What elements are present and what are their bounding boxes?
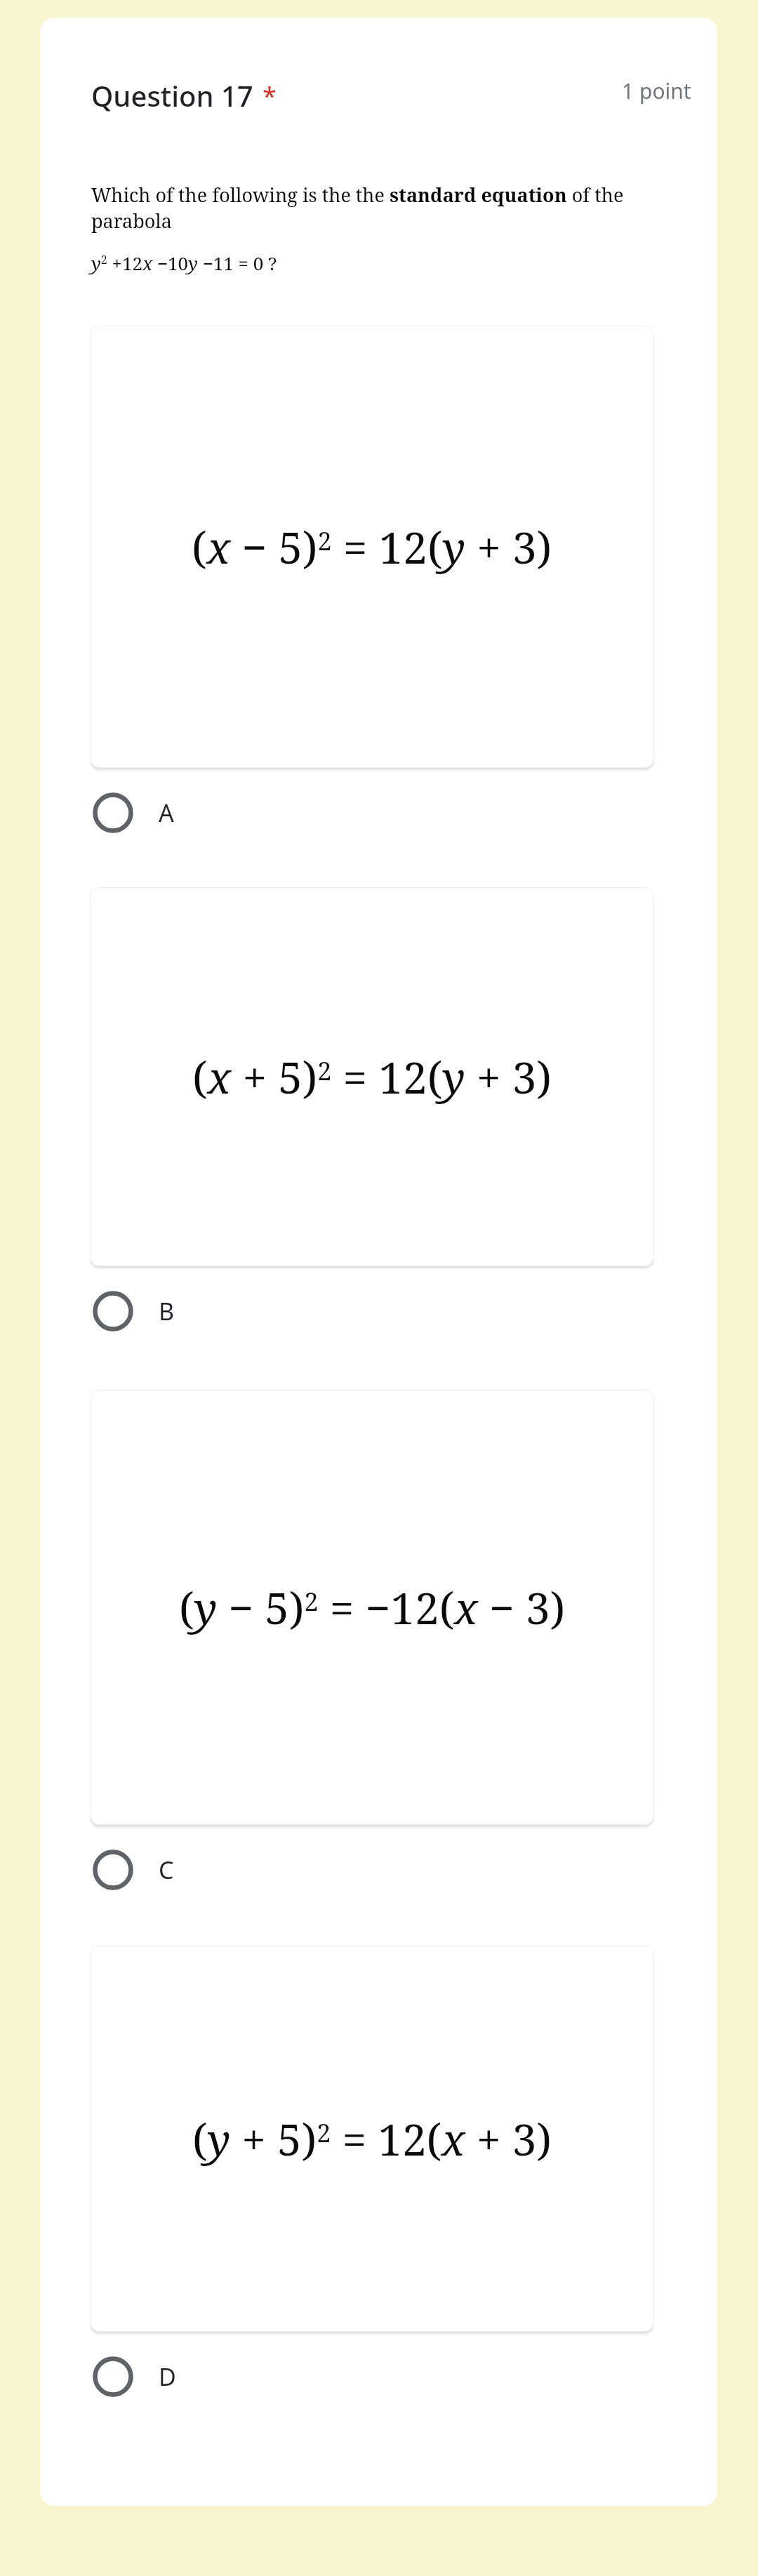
staticText: Question 17 (91, 77, 253, 114)
button[interactable]: Option A (90, 774, 654, 852)
staticText: 1 point (622, 77, 691, 105)
staticText: D (159, 2361, 176, 2393)
staticText: (y + 5)2 = 12(x + 3) (192, 2109, 552, 2168)
staticText: B (159, 1295, 175, 1327)
button[interactable]: (y + 5)2 = 12(x + 3) (90, 1946, 654, 2332)
staticText: y2 +12x −10y −11 = 0 ? (91, 251, 277, 275)
staticText: Which of the following is the the standa… (91, 182, 689, 234)
staticText: (x + 5)2 = 12(y + 3) (192, 1047, 552, 1106)
staticText: * (262, 79, 277, 113)
staticText: A (159, 797, 174, 829)
button[interactable]: (y − 5)2 = −12(x − 3) (90, 1390, 654, 1825)
staticText: C (159, 1854, 174, 1886)
button[interactable]: Option D (90, 2337, 654, 2416)
staticText: (y − 5)2 = −12(x − 3) (179, 1578, 566, 1637)
button[interactable]: (x + 5)2 = 12(y + 3) (90, 887, 654, 1266)
button[interactable]: (x − 5)2 = 12(y + 3) (90, 326, 654, 768)
button[interactable]: Option C (90, 1831, 654, 1909)
staticText: (x − 5)2 = 12(y + 3) (192, 517, 552, 576)
button[interactable]: Option B (90, 1272, 654, 1350)
